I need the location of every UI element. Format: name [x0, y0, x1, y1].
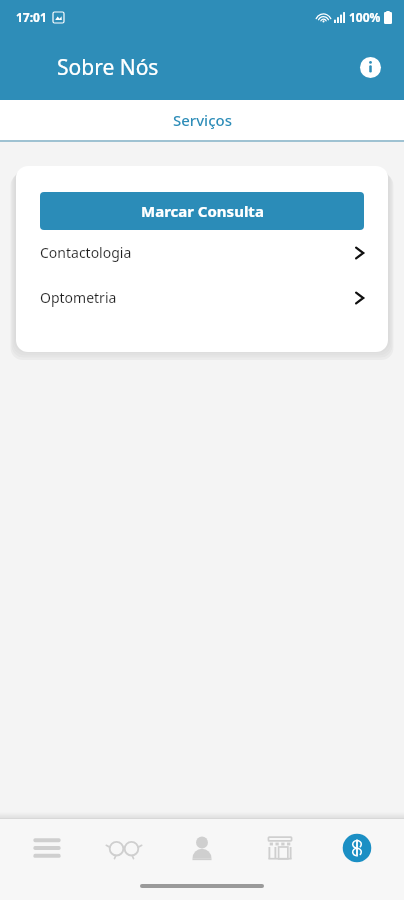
staticText: Serviços — [173, 110, 232, 130]
button[interactable]: Serviços — [0, 100, 404, 140]
staticText: 100% — [349, 9, 381, 25]
button[interactable]: Contactologia — [40, 230, 364, 275]
button[interactable]: Profile — [171, 819, 233, 877]
staticText: Sobre Nós — [57, 53, 159, 82]
staticText: Optometria — [40, 288, 117, 307]
button[interactable]: Marcar Consulta — [40, 192, 364, 230]
staticText: Marcar Consulta — [141, 201, 264, 221]
staticText: 17:01 — [16, 9, 47, 25]
button[interactable]: Information — [350, 47, 390, 87]
staticText: Contactologia — [40, 243, 132, 262]
button[interactable]: Store — [249, 819, 311, 877]
button[interactable]: Menu — [16, 819, 78, 877]
button[interactable]: Glasses — [93, 819, 155, 877]
button[interactable]: Health — [326, 819, 388, 877]
button[interactable]: Optometria — [40, 275, 364, 320]
